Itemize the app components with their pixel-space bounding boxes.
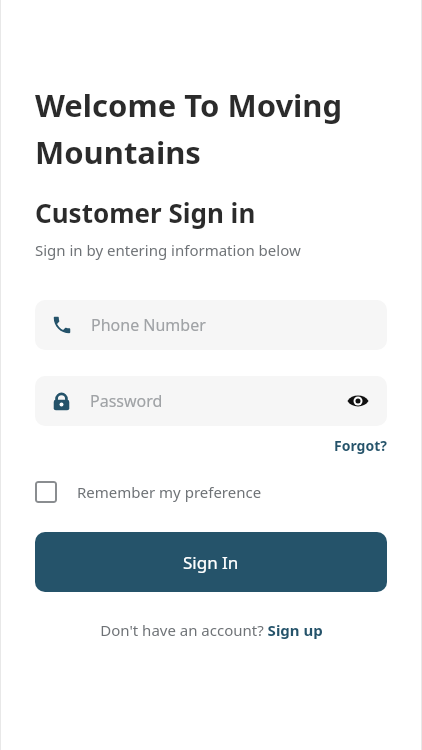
staticText: Password [90,390,343,412]
button[interactable]: Show password [343,386,373,416]
staticText: Remember my preference [77,482,262,502]
button[interactable]: Forgot? [334,436,387,455]
button[interactable]: Phone Number [35,300,387,350]
button[interactable]: Remember my preference [35,481,262,503]
staticText: Customer Sign in [35,195,256,230]
staticText: Sign in by entering information below [35,240,301,260]
staticText: Phone Number [91,314,206,336]
button[interactable]: Don't have an account? Sign up [100,620,323,640]
staticText: Welcome To Moving Mountains [35,84,387,173]
button[interactable]: Password [35,376,387,426]
button[interactable]: Sign In [35,532,387,592]
staticText: Sign In [183,551,239,574]
